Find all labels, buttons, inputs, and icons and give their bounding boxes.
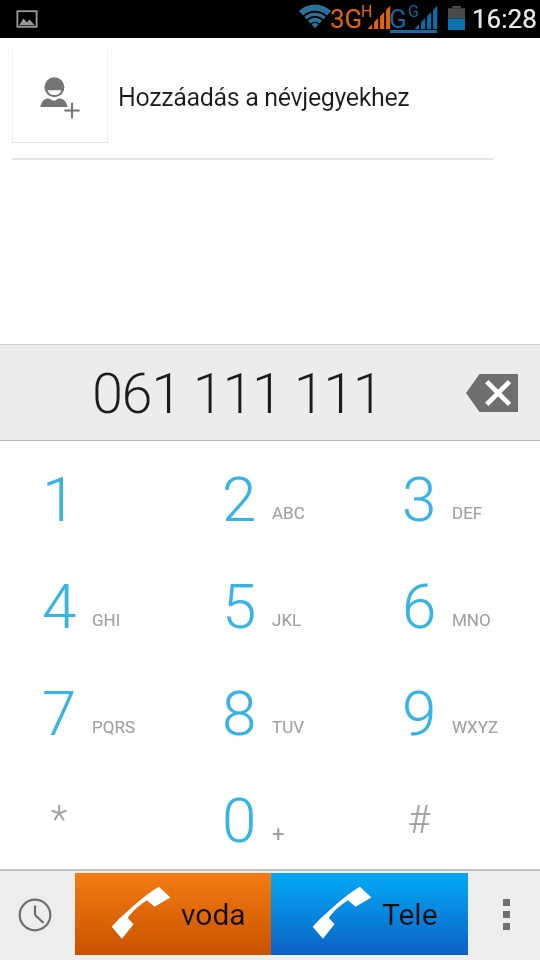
staticText: G [408, 2, 419, 21]
button[interactable]: voda [75, 873, 271, 955]
staticText: + [272, 822, 285, 848]
staticText: TUV [272, 717, 304, 737]
button[interactable]: More options [468, 869, 540, 960]
staticText: 0 [222, 784, 257, 857]
button[interactable]: Call log [0, 869, 75, 960]
staticText: 16:28 [472, 4, 537, 34]
staticText: WXYZ [452, 717, 499, 737]
staticText: Tele [382, 897, 438, 932]
button[interactable]: 6 [360, 548, 540, 655]
staticText: 7 [42, 677, 77, 750]
staticText: 5 [222, 570, 257, 643]
staticText: 8 [222, 677, 257, 750]
staticText: JKL [272, 610, 302, 630]
button[interactable]: Tele [271, 873, 468, 955]
staticText: * [51, 798, 68, 843]
staticText: GHI [92, 610, 121, 630]
button[interactable]: 9 [360, 655, 540, 762]
staticText: 3G [330, 4, 363, 34]
staticText: 1 [42, 463, 77, 536]
button[interactable]: 2 [180, 441, 360, 548]
staticText: ABC [272, 503, 305, 523]
staticText: G [389, 4, 407, 34]
button[interactable]: Hozzáadás a névjegyekhez [0, 38, 540, 144]
button[interactable]: Backspace [444, 345, 540, 440]
staticText: 6 [402, 570, 437, 643]
staticText: voda [181, 897, 246, 932]
button[interactable]: 5 [180, 548, 360, 655]
staticText: 9 [402, 677, 437, 750]
staticText: Hozzáadás a névjegyekhez [118, 83, 410, 112]
button[interactable]: * [0, 762, 180, 869]
staticText: PQRS [92, 717, 135, 737]
staticText: H [361, 2, 373, 21]
staticText: # [408, 798, 431, 843]
staticText: MNO [452, 610, 491, 630]
staticText: DEF [452, 503, 483, 523]
button[interactable]: 3 [360, 441, 540, 548]
staticText: 2 [222, 463, 257, 536]
staticText: 4 [42, 570, 77, 643]
staticText: 3 [402, 463, 437, 536]
button[interactable]: # [360, 762, 540, 869]
button[interactable]: 7 [0, 655, 180, 762]
button[interactable]: 0 [180, 762, 360, 869]
button[interactable]: 1 [0, 441, 180, 548]
button[interactable]: 4 [0, 548, 180, 655]
button[interactable]: 8 [180, 655, 360, 762]
staticText: 061 111 111 [92, 361, 383, 427]
